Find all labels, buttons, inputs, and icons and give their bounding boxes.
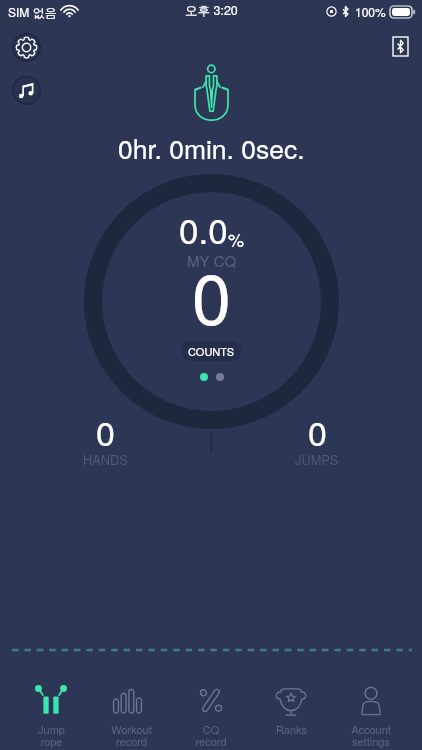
- staticText: SIM 없음: [8, 3, 57, 20]
- button[interactable]: Ranks: [251, 680, 331, 750]
- button[interactable]: Settings: [12, 33, 41, 62]
- staticText: 0: [308, 407, 327, 456]
- staticText: 0: [96, 407, 115, 456]
- staticText: 100%: [355, 3, 386, 20]
- staticText: COUNTS: [188, 343, 235, 359]
- staticText: MY CQ: [187, 250, 237, 271]
- staticText: 0hr. 0min. 0sec.: [118, 129, 305, 167]
- staticText: Account settings: [351, 721, 391, 750]
- staticText: 0.0: [179, 204, 228, 254]
- button[interactable]: Music: [12, 76, 41, 105]
- staticText: Jump rope: [38, 721, 65, 750]
- staticText: Ranks: [276, 721, 307, 737]
- button[interactable]: Bluetooth: [392, 36, 409, 57]
- button[interactable]: Jump rope: [11, 680, 91, 750]
- staticText: Workout record: [111, 721, 152, 750]
- staticText: HANDS: [83, 450, 128, 468]
- staticText: JUMPS: [295, 450, 339, 468]
- staticText: 오후 3:20: [185, 1, 238, 19]
- button[interactable]: Account settings: [331, 680, 411, 750]
- button[interactable]: Workout record: [91, 680, 171, 750]
- button[interactable]: COUNTS: [182, 341, 241, 361]
- button[interactable]: CQ record: [171, 680, 251, 750]
- staticText: 0: [192, 245, 231, 345]
- staticText: CQ record: [195, 721, 227, 750]
- staticText: %: [228, 226, 245, 252]
